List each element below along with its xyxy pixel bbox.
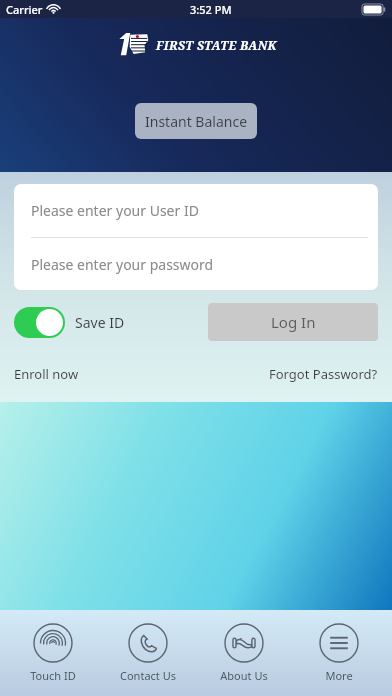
staticText: Please enter your User ID (31, 201, 199, 220)
button[interactable]: Please enter your User ID (14, 184, 378, 237)
staticText: Forgot Password? (269, 365, 378, 383)
staticText: Please enter your password (31, 255, 214, 274)
staticText: About Us (220, 668, 268, 683)
button[interactable]: Contact Us (106, 619, 190, 687)
staticText: Instant Balance (145, 112, 248, 131)
button[interactable]: Save ID (14, 307, 125, 338)
button[interactable]: Log In (208, 303, 378, 341)
button[interactable]: Touch ID (11, 619, 95, 687)
staticText: Save ID (75, 313, 125, 332)
staticText: Log In (271, 312, 316, 332)
staticText: Touch ID (30, 668, 76, 683)
button[interactable]: Forgot Password? (269, 365, 378, 383)
button[interactable]: Instant Balance (135, 103, 257, 139)
staticText: Carrier (6, 2, 43, 17)
staticText: FIRST STATE BANK (156, 37, 277, 53)
button[interactable]: Enroll now (14, 365, 79, 383)
button[interactable]: About Us (202, 619, 286, 687)
staticText: 3:52 PM (190, 2, 232, 17)
staticText: More (325, 668, 353, 683)
staticText: Enroll now (14, 365, 79, 383)
button[interactable]: More (297, 619, 381, 687)
button[interactable]: Please enter your password (14, 238, 378, 290)
staticText: Contact Us (120, 668, 176, 683)
